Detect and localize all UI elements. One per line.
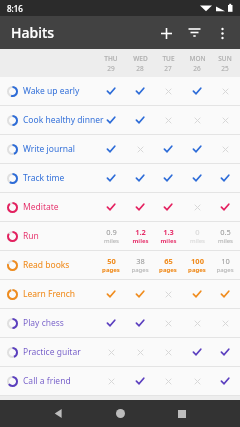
button[interactable]: Not done: [127, 135, 153, 163]
button[interactable]: Completed: [184, 164, 210, 192]
button[interactable]: Completed: [155, 164, 181, 192]
button[interactable]: Not done: [212, 77, 238, 105]
button[interactable]: Not done: [98, 338, 124, 366]
button[interactable]: Completed: [212, 280, 238, 308]
button[interactable]: Completed: [98, 280, 124, 308]
staticText: 100: [191, 256, 204, 266]
button[interactable]: Completed: [127, 164, 153, 192]
button[interactable]: Completed: [184, 135, 210, 163]
button[interactable]: Completed: [127, 367, 153, 395]
button[interactable]: 50: [97, 251, 125, 279]
staticText: miles: [160, 237, 177, 245]
button[interactable]: 38: [126, 251, 154, 279]
button[interactable]: 100: [183, 251, 211, 279]
staticText: Write journal: [23, 143, 75, 155]
staticText: 0: [195, 227, 200, 237]
button[interactable]: Completed: [98, 309, 124, 337]
button[interactable]: Not done: [155, 280, 181, 308]
button[interactable]: Read books: [0, 251, 240, 279]
button[interactable]: Run: [0, 222, 240, 250]
button[interactable]: 0.9: [97, 222, 125, 250]
staticText: 65: [164, 256, 173, 266]
button[interactable]: Play chess: [0, 309, 240, 337]
button[interactable]: Completed: [212, 164, 238, 192]
button[interactable]: Call a friend: [0, 367, 240, 395]
staticText: 28: [136, 64, 144, 73]
button[interactable]: 0: [183, 222, 211, 250]
button[interactable]: Not done: [184, 193, 210, 221]
staticText: SUN: [218, 54, 232, 63]
button[interactable]: Track time: [0, 164, 240, 192]
button[interactable]: Back: [44, 400, 72, 427]
button[interactable]: Completed: [155, 135, 181, 163]
button[interactable]: Not done: [127, 338, 153, 366]
staticText: 0.9: [106, 227, 117, 237]
staticText: Track time: [23, 172, 65, 184]
button[interactable]: Wake up early: [0, 77, 240, 105]
button[interactable]: 65: [154, 251, 182, 279]
button[interactable]: Completed: [98, 106, 124, 134]
button[interactable]: 1.2: [126, 222, 154, 250]
button[interactable]: Learn French: [0, 280, 240, 308]
staticText: pages: [188, 266, 206, 274]
button[interactable]: Completed: [184, 77, 210, 105]
staticText: pages: [159, 266, 177, 274]
button[interactable]: Completed: [155, 193, 181, 221]
button[interactable]: Meditate: [0, 193, 240, 221]
staticText: Meditate: [23, 201, 59, 213]
button[interactable]: Completed: [212, 193, 238, 221]
button[interactable]: Not done: [155, 77, 181, 105]
staticText: Learn French: [23, 288, 76, 300]
button[interactable]: Completed: [127, 77, 153, 105]
button[interactable]: Not done: [155, 309, 181, 337]
button[interactable]: Filter: [180, 19, 208, 47]
staticText: miles: [104, 237, 119, 245]
button[interactable]: Home: [106, 400, 134, 427]
staticText: pages: [102, 266, 120, 274]
button[interactable]: Not done: [184, 309, 210, 337]
button[interactable]: More options: [208, 19, 236, 47]
staticText: Run: [23, 230, 39, 242]
button[interactable]: Completed: [127, 309, 153, 337]
button[interactable]: Not done: [212, 106, 238, 134]
staticText: 27: [164, 64, 172, 73]
button[interactable]: Write journal: [0, 135, 240, 163]
staticText: THU: [104, 54, 118, 63]
staticText: Play chess: [23, 317, 64, 329]
staticText: pages: [216, 266, 234, 274]
button[interactable]: Not done: [155, 106, 181, 134]
button[interactable]: Completed: [184, 280, 210, 308]
button[interactable]: Completed: [184, 338, 210, 366]
button[interactable]: Completed: [127, 280, 153, 308]
button[interactable]: Completed: [98, 193, 124, 221]
staticText: 29: [107, 64, 115, 73]
button[interactable]: Not done: [155, 367, 181, 395]
staticText: miles: [218, 237, 233, 245]
button[interactable]: Add habit: [152, 19, 180, 47]
button[interactable]: Not done: [98, 367, 124, 395]
button[interactable]: Practice guitar: [0, 338, 240, 366]
staticText: 25: [221, 64, 229, 73]
button[interactable]: 10: [211, 251, 239, 279]
button[interactable]: Completed: [127, 193, 153, 221]
button[interactable]: Completed: [98, 77, 124, 105]
button[interactable]: Cook healthy dinner: [0, 106, 240, 134]
staticText: 38: [136, 256, 145, 266]
button[interactable]: Not done: [212, 309, 238, 337]
staticText: 50: [107, 256, 116, 266]
button[interactable]: Completed: [212, 367, 238, 395]
button[interactable]: Not done: [184, 106, 210, 134]
button[interactable]: Not done: [212, 135, 238, 163]
button[interactable]: Not done: [155, 338, 181, 366]
staticText: 0.5: [220, 227, 231, 237]
staticText: 10: [221, 256, 230, 266]
staticText: miles: [190, 237, 205, 245]
button[interactable]: 0.5: [211, 222, 239, 250]
button[interactable]: Completed: [98, 164, 124, 192]
button[interactable]: Completed: [212, 338, 238, 366]
button[interactable]: Completed: [98, 135, 124, 163]
button[interactable]: Recent apps: [168, 400, 196, 427]
button[interactable]: Completed: [127, 106, 153, 134]
button[interactable]: Not done: [184, 367, 210, 395]
button[interactable]: 1.3: [154, 222, 182, 250]
